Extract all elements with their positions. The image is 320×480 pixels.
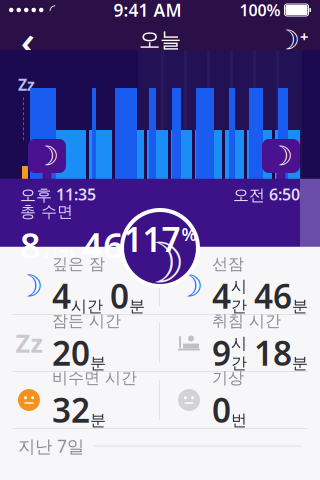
staticText: 8 <box>20 221 41 269</box>
staticText: ☽ <box>276 25 300 55</box>
staticText: 분 <box>90 353 106 373</box>
button[interactable]: ☽ <box>160 258 320 314</box>
staticText: 오후 11:35 <box>20 184 96 205</box>
staticText: ☽ <box>175 269 202 303</box>
staticText: 기상 <box>212 368 244 388</box>
staticText: ☽ <box>35 141 59 171</box>
staticText: 18 <box>254 331 292 375</box>
button[interactable]: Back <box>6 20 50 60</box>
staticText: 분 <box>90 410 106 430</box>
staticText: % <box>181 223 196 246</box>
staticText: ☽ <box>15 269 42 303</box>
staticText: 잠든 시간 <box>52 311 121 331</box>
staticText: 20 <box>52 331 90 375</box>
staticText: ☽ <box>269 141 293 171</box>
staticText: Zz <box>15 326 42 360</box>
button[interactable]: ☽ <box>0 258 159 314</box>
staticText: 시간 <box>71 296 103 316</box>
staticText: 번 <box>231 410 247 430</box>
staticText: 분 <box>124 246 141 267</box>
staticText: 117 <box>123 217 180 261</box>
staticText: 지난 7일 <box>18 434 84 457</box>
staticText: 깊은 잠 <box>52 254 105 274</box>
staticText: 4 <box>212 274 231 318</box>
staticText: 46 <box>254 274 292 318</box>
staticText: Zz <box>18 74 35 95</box>
staticText: 100% <box>239 0 280 21</box>
staticText: + <box>300 27 308 46</box>
staticText: 46 <box>82 221 124 269</box>
staticText: 분 <box>292 353 308 373</box>
staticText: 시간 <box>231 277 247 316</box>
button[interactable]: Add sleep record <box>270 20 314 60</box>
staticText: ☽ <box>135 231 185 295</box>
staticText: 9:41 AM <box>113 0 181 21</box>
staticText: 시간 <box>41 246 75 267</box>
button[interactable]: 취침 시간 <box>160 315 320 371</box>
button[interactable]: 기상 <box>160 372 320 428</box>
staticText: 오늘 <box>139 27 181 53</box>
staticText: 비수면 시간 <box>52 368 137 388</box>
staticText: 오전 6:50 <box>233 184 300 205</box>
staticText: 32 <box>52 388 90 432</box>
staticText: ◜ <box>49 2 55 18</box>
staticText: 선잠 <box>212 254 244 274</box>
staticText: 분 <box>292 296 308 316</box>
staticText: 9 <box>212 331 231 375</box>
button[interactable]: 비수면 시간 <box>0 372 159 428</box>
staticText: 총 수면 <box>20 202 73 221</box>
staticText: 0 <box>212 388 231 432</box>
staticText: 시간 <box>231 334 247 373</box>
staticText: 취침 시간 <box>212 311 281 331</box>
staticText: 4 <box>52 274 71 318</box>
staticText: 분 <box>129 296 145 316</box>
button[interactable]: Zz <box>0 315 159 371</box>
staticText: 0 <box>110 274 129 318</box>
staticText: ‹ <box>20 10 35 70</box>
